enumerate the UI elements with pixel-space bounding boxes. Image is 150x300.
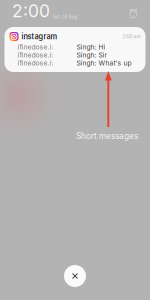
staticText: instagram (21, 32, 57, 41)
button[interactable]: Camera (128, 10, 139, 21)
staticText: ifinedose.i: (17, 59, 53, 67)
staticText: Singh: What's up (76, 59, 131, 67)
staticText: ifinedose.i: (17, 43, 53, 51)
staticText: Singh: Hi (76, 43, 105, 51)
staticText: ifinedose.i: (17, 51, 53, 59)
staticText: 2:00 (12, 0, 50, 21)
button[interactable]: instagram (4, 27, 145, 72)
staticText: Sat, 19 Aug (52, 14, 77, 20)
staticText: Short messages (76, 131, 138, 141)
staticText: 2:00 am (122, 33, 140, 39)
button[interactable]: Close (64, 265, 86, 287)
staticText: Singh: Sir (76, 51, 107, 59)
